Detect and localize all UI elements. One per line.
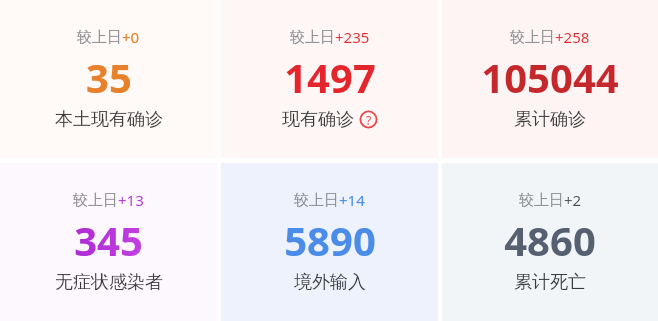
staticText: 105044	[481, 50, 619, 104]
button[interactable]: 较上日	[0, 0, 217, 158]
staticText: 345	[74, 213, 143, 267]
staticText: 境外输入	[294, 271, 366, 294]
button[interactable]: 较上日	[221, 0, 438, 158]
staticText: +14	[339, 190, 365, 210]
staticText: 较上日	[77, 28, 122, 47]
staticText: +0	[122, 27, 140, 47]
staticText: +235	[335, 27, 370, 47]
staticText: +13	[118, 190, 144, 210]
staticText: 较上日	[294, 191, 339, 210]
button[interactable]: 较上日	[221, 163, 438, 321]
staticText: +258	[555, 27, 590, 47]
staticText: 本土现有确诊	[55, 108, 163, 131]
staticText: 较上日	[290, 28, 335, 47]
button[interactable]: 较上日	[0, 163, 217, 321]
staticText: 无症状感染者	[55, 271, 163, 294]
staticText: 1497	[284, 50, 376, 104]
staticText: 较上日	[519, 191, 564, 210]
staticText: 累计确诊	[514, 108, 586, 131]
button[interactable]: 较上日	[442, 0, 658, 158]
staticText: 35	[86, 50, 132, 104]
staticText: +2	[564, 190, 582, 210]
staticText: 现有确诊	[282, 108, 354, 131]
staticText: ?	[366, 112, 372, 128]
button[interactable]: 较上日	[442, 163, 658, 321]
staticText: 5890	[284, 213, 376, 267]
staticText: 4860	[504, 213, 596, 267]
staticText: 较上日	[73, 191, 118, 210]
button[interactable]: 现有确诊说明	[359, 110, 378, 129]
staticText: 累计死亡	[514, 271, 586, 294]
staticText: 较上日	[510, 28, 555, 47]
